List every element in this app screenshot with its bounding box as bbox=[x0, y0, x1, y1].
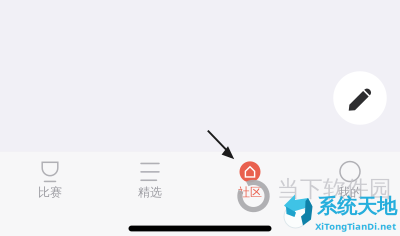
staticText: 我的 bbox=[338, 185, 362, 199]
button[interactable]: Compose post bbox=[333, 71, 387, 125]
button[interactable]: 社区 bbox=[200, 151, 300, 200]
staticText: XiTongTianDi.net bbox=[315, 220, 396, 232]
button[interactable]: 我的 bbox=[300, 151, 400, 200]
staticText: 当下软件园 bbox=[277, 175, 392, 203]
staticText: 精选 bbox=[138, 185, 162, 199]
staticText: 比赛 bbox=[38, 185, 62, 199]
staticText: 社区 bbox=[238, 185, 262, 199]
button[interactable]: 精选 bbox=[100, 151, 200, 200]
button[interactable]: 比赛 bbox=[0, 151, 100, 200]
staticText: 系统天地 bbox=[317, 194, 397, 219]
